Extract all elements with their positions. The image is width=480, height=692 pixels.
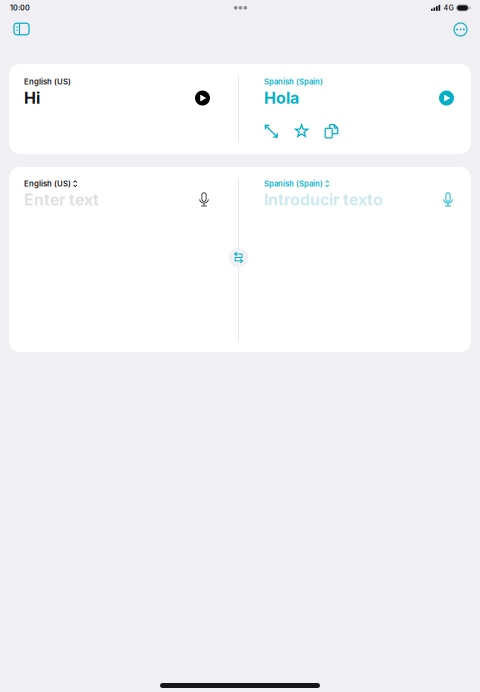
- button[interactable]: Play Spanish: [439, 90, 454, 105]
- button[interactable]: English (US): [24, 179, 77, 188]
- staticText: English (US): [24, 179, 71, 188]
- staticText: English (US): [24, 77, 71, 86]
- staticText: 10:00: [10, 3, 30, 12]
- staticText: Spanish (Spain): [264, 179, 323, 188]
- button[interactable]: Dictate English: [199, 192, 209, 207]
- button[interactable]: Show sidebar: [9, 19, 33, 39]
- button[interactable]: Spanish (Spain): [264, 179, 329, 188]
- button[interactable]: Full screen: [264, 124, 279, 138]
- button[interactable]: Add to favourites: [295, 124, 308, 138]
- button[interactable]: Copy translation: [325, 124, 339, 139]
- button[interactable]: Play English: [195, 90, 210, 105]
- staticText: Hi: [24, 88, 40, 108]
- staticText: Enter text: [24, 190, 99, 209]
- staticText: Spanish (Spain): [264, 77, 323, 86]
- button[interactable]: Swap languages: [228, 247, 248, 267]
- staticText: 4G: [444, 4, 454, 12]
- button[interactable]: Dictate Spanish: [443, 192, 453, 207]
- staticText: Hola: [264, 88, 299, 108]
- button[interactable]: More options: [449, 19, 471, 39]
- staticText: Introducir texto: [264, 190, 383, 209]
